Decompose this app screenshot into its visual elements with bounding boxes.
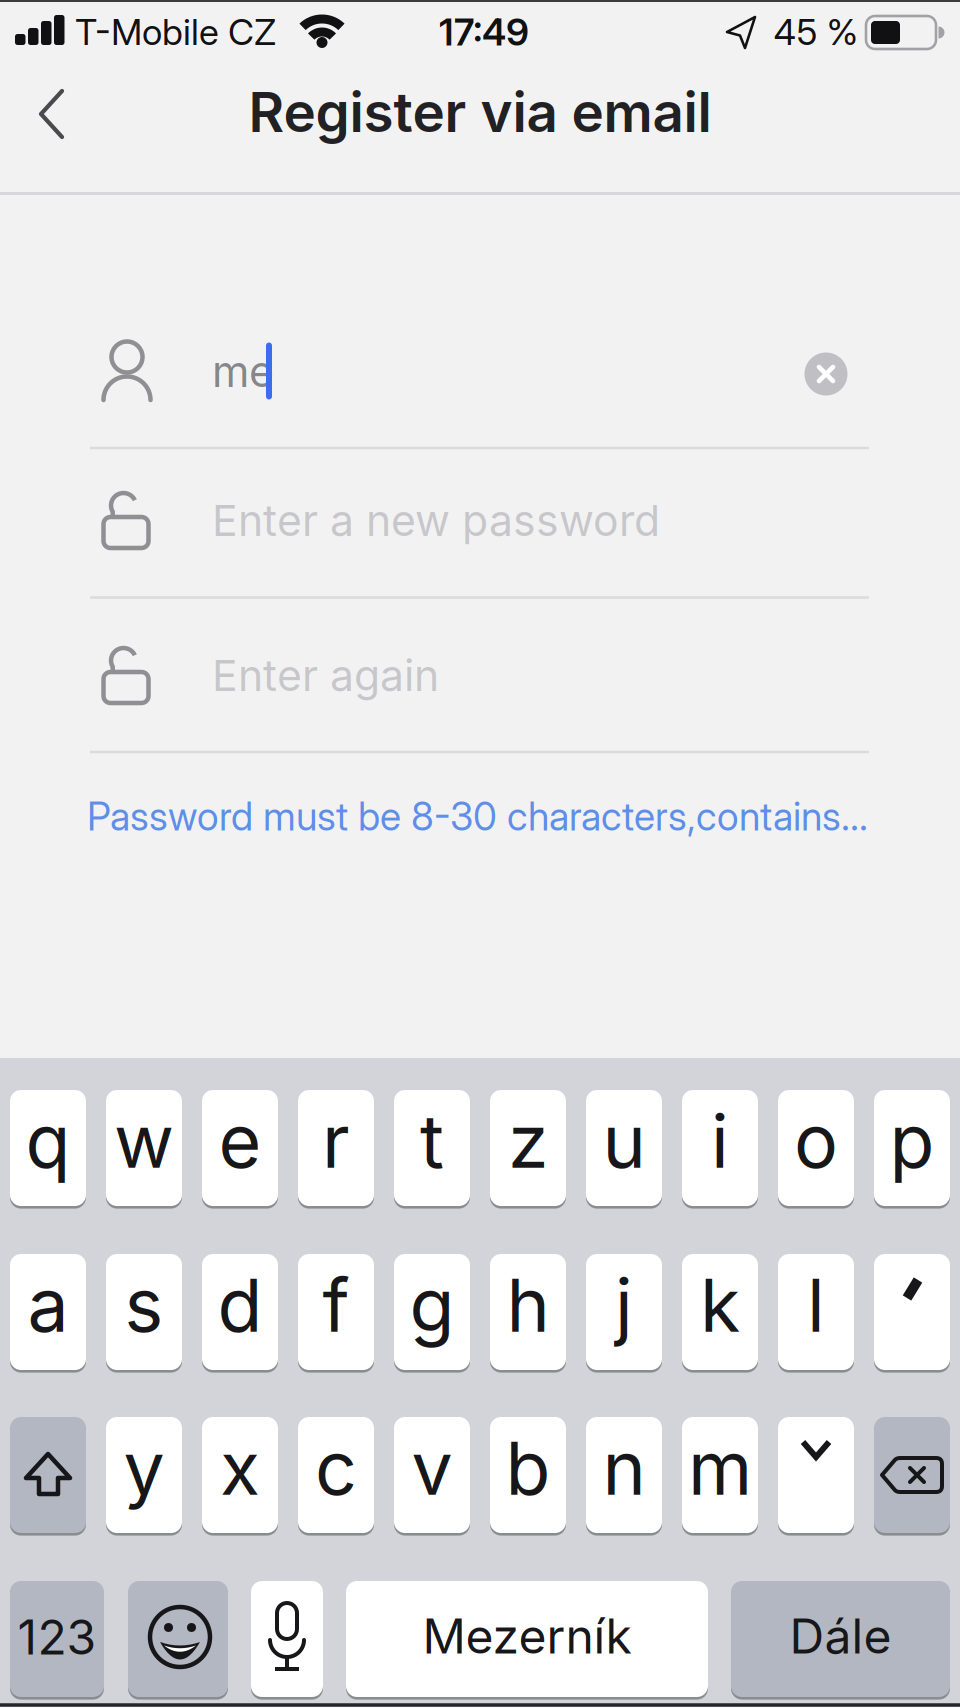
button[interactable]: u — [586, 1090, 662, 1206]
button[interactable] — [90, 448, 870, 596]
button[interactable]: j — [586, 1254, 662, 1370]
button[interactable]: Dále — [731, 1581, 950, 1697]
button[interactable]: Mezerník — [346, 1581, 708, 1697]
staticText: x — [220, 1424, 260, 1512]
staticText: Dále — [789, 1607, 891, 1665]
button[interactable]: l — [778, 1254, 854, 1370]
button[interactable]: i — [682, 1090, 758, 1206]
button[interactable]: k — [682, 1254, 758, 1370]
staticText: c — [315, 1424, 357, 1512]
staticText: p — [889, 1097, 934, 1185]
staticText: i — [711, 1097, 729, 1185]
button[interactable]: 123 — [10, 1581, 104, 1697]
staticText: y — [123, 1424, 164, 1512]
staticText: t — [420, 1097, 444, 1185]
staticText: n — [602, 1424, 645, 1512]
button[interactable]: p — [874, 1090, 950, 1206]
staticText: o — [794, 1097, 838, 1185]
button[interactable]: n — [586, 1417, 662, 1533]
staticText: e — [218, 1097, 261, 1185]
button[interactable]: q — [10, 1090, 86, 1206]
staticText: Register via email — [248, 79, 711, 145]
staticText: h — [506, 1261, 549, 1349]
button[interactable]: s — [106, 1254, 182, 1370]
staticText: me — [212, 346, 274, 397]
staticText: Mezerník — [422, 1607, 631, 1665]
staticText: 17:49 — [439, 9, 529, 55]
button[interactable]: w — [106, 1090, 182, 1206]
staticText: q — [25, 1097, 70, 1185]
staticText: j — [615, 1261, 633, 1349]
staticText: u — [602, 1097, 645, 1185]
button[interactable]: Emoji — [128, 1581, 228, 1697]
staticText: Enter a new password — [212, 495, 660, 546]
button[interactable]: t — [394, 1090, 470, 1206]
button[interactable]: x — [202, 1417, 278, 1533]
button[interactable]: Back — [8, 70, 96, 158]
button[interactable]: g — [394, 1254, 470, 1370]
staticText: l — [807, 1261, 825, 1349]
button[interactable]: h — [490, 1254, 566, 1370]
staticText: Password must be 8-30 characters,contain… — [87, 793, 868, 840]
staticText: Enter again — [212, 650, 439, 701]
staticText: 45 % — [773, 10, 858, 54]
button[interactable] — [90, 603, 870, 751]
button[interactable]: e — [202, 1090, 278, 1206]
button[interactable]: Caron — [778, 1417, 854, 1533]
button[interactable]: Acute accent — [874, 1254, 950, 1370]
button[interactable]: z — [490, 1090, 566, 1206]
staticText: r — [322, 1097, 350, 1185]
button[interactable]: f — [298, 1254, 374, 1370]
staticText: d — [217, 1261, 262, 1349]
staticText: s — [124, 1261, 163, 1349]
staticText: b — [505, 1424, 550, 1512]
button[interactable]: a — [10, 1254, 86, 1370]
staticText: v — [411, 1424, 452, 1512]
staticText: z — [508, 1097, 548, 1185]
button[interactable]: c — [298, 1417, 374, 1533]
staticText: g — [409, 1261, 454, 1349]
staticText: 123 — [17, 1608, 96, 1666]
staticText: T-Mobile CZ — [75, 10, 276, 54]
button[interactable]: m — [682, 1417, 758, 1533]
staticText: a — [27, 1261, 68, 1349]
button[interactable]: r — [298, 1090, 374, 1206]
staticText: f — [322, 1261, 349, 1349]
button[interactable]: b — [490, 1417, 566, 1533]
button[interactable]: Dictate — [251, 1581, 323, 1697]
staticText: m — [688, 1424, 752, 1512]
button[interactable]: Shift — [10, 1417, 86, 1533]
button[interactable] — [90, 298, 870, 446]
button[interactable]: y — [106, 1417, 182, 1533]
button[interactable]: d — [202, 1254, 278, 1370]
staticText: w — [114, 1097, 174, 1185]
button[interactable]: Clear text — [804, 352, 847, 395]
button[interactable]: Delete — [874, 1417, 950, 1533]
button[interactable]: o — [778, 1090, 854, 1206]
staticText: k — [700, 1261, 740, 1349]
button[interactable]: v — [394, 1417, 470, 1533]
